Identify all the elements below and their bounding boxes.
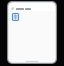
button[interactable]: Navigate up	[11, 7, 14, 10]
button[interactable]: More options	[50, 7, 53, 10]
button[interactable]: Document	[12, 13, 19, 21]
button[interactable]	[16, 8, 50, 10]
